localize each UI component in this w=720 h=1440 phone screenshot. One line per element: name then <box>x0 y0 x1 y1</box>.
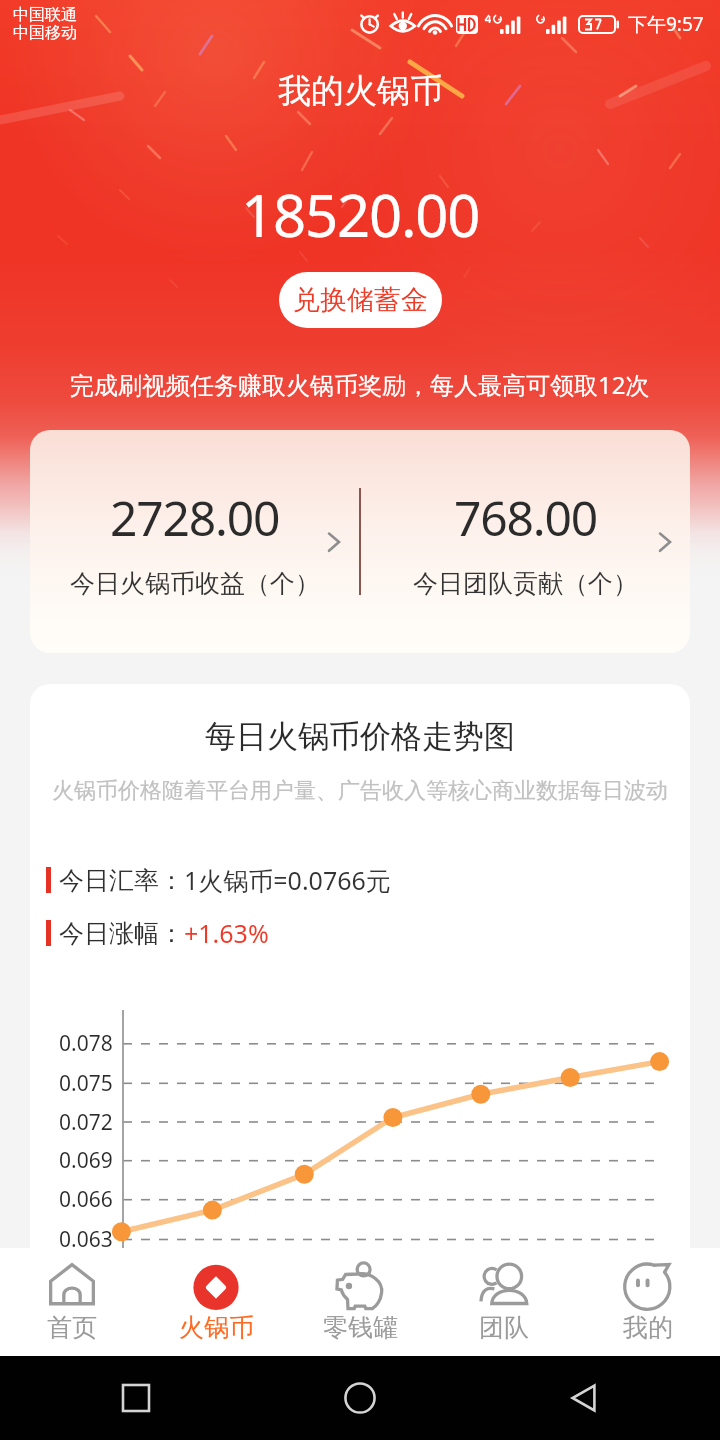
staticText: 零钱罐 <box>323 1312 398 1343</box>
staticText: 火锅币价格随着平台用户量、广告收入等核心商业数据每日波动 <box>52 777 668 805</box>
staticText: 1火锅币=0.0766元 <box>184 863 391 897</box>
staticText: 我的 <box>623 1312 673 1343</box>
staticText: 团队 <box>479 1312 529 1343</box>
staticText: 18520.00 <box>241 175 480 254</box>
staticText: 中国移动 <box>13 23 77 43</box>
staticText: 0.069 <box>59 1146 113 1175</box>
staticText: 首页 <box>47 1312 97 1343</box>
staticText: 768.00 <box>454 485 597 550</box>
staticText: +1.63% <box>184 916 269 950</box>
staticText: 0.072 <box>59 1108 113 1137</box>
staticText: 每日火锅币价格走势图 <box>205 717 515 756</box>
staticText: 火锅币 <box>179 1312 254 1343</box>
staticText: 我的火锅币 <box>278 70 443 112</box>
button[interactable]: 零钱罐 <box>300 1248 420 1356</box>
button[interactable]: 2728.00 <box>30 430 359 610</box>
staticText: 中国联通 <box>13 5 77 25</box>
staticText: 0.078 <box>59 1029 113 1058</box>
staticText: 今日汇率： <box>59 865 184 896</box>
button[interactable]: Home <box>334 1372 386 1424</box>
button[interactable]: 首页 <box>12 1248 132 1356</box>
staticText: 今日火锅币收益（个） <box>70 568 320 599</box>
staticText: 今日团队贡献（个） <box>413 568 638 599</box>
button[interactable]: 火锅币 <box>156 1248 276 1356</box>
button[interactable]: Recent apps <box>110 1372 162 1424</box>
button[interactable]: Back <box>558 1372 610 1424</box>
staticText: 2728.00 <box>110 485 280 550</box>
staticText: 0.075 <box>59 1069 113 1098</box>
button[interactable]: 兑换储蓄金 <box>279 272 442 328</box>
button[interactable]: 我的 <box>588 1248 708 1356</box>
staticText: 今日涨幅： <box>59 918 184 949</box>
staticText: 兑换储蓄金 <box>293 283 428 317</box>
button[interactable]: 768.00 <box>361 430 690 610</box>
staticText: 0.066 <box>59 1185 113 1214</box>
staticText: 0.063 <box>59 1225 113 1254</box>
staticText: 下午9:57 <box>628 11 704 37</box>
staticText: 完成刷视频任务赚取火锅币奖励，每人最高可领取12次 <box>70 368 650 401</box>
button[interactable]: 团队 <box>444 1248 564 1356</box>
